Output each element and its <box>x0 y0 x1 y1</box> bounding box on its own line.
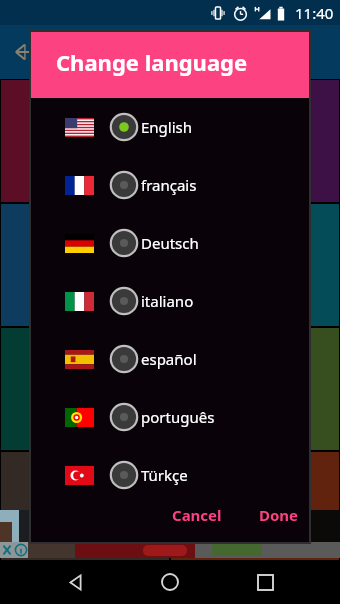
staticText: Deutsch <box>141 233 199 253</box>
button[interactable]: Back <box>8 36 40 68</box>
staticText: Synchronization <box>5 404 165 422</box>
staticText: Done <box>259 505 299 525</box>
button[interactable]: Login Setting <box>171 204 339 326</box>
button[interactable]: Deutsch <box>31 214 309 272</box>
button[interactable]: Done <box>250 499 308 531</box>
staticText: Login Setting <box>175 280 335 298</box>
button[interactable]: Back <box>55 562 95 602</box>
staticText: Rate Us <box>175 528 335 546</box>
button[interactable]: français <box>31 156 309 214</box>
button[interactable]: Rate Us <box>171 452 339 574</box>
staticText: Settings <box>5 528 165 546</box>
staticText: English <box>141 117 193 137</box>
button[interactable]: español <box>31 330 309 388</box>
button[interactable]: Home <box>150 562 190 602</box>
staticText: Change language <box>5 280 165 298</box>
staticText: Day mode <box>175 404 335 422</box>
button[interactable]: Settings <box>1 452 169 574</box>
button[interactable]: Türkçe <box>31 446 309 504</box>
staticText: português <box>141 407 215 427</box>
button[interactable]: Recents <box>245 562 285 602</box>
button[interactable]: Cancel <box>163 499 231 531</box>
button[interactable]: Synchronization <box>1 328 169 450</box>
staticText: italiano <box>141 291 194 311</box>
staticText: Change language <box>56 47 248 77</box>
button[interactable]: Donate <box>171 80 339 202</box>
staticText: Cancel <box>172 505 222 525</box>
button[interactable]: italiano <box>31 272 309 330</box>
staticText: About Us <box>5 156 165 174</box>
staticText: français <box>141 175 197 195</box>
button[interactable] <box>0 510 340 558</box>
button[interactable]: Day mode <box>171 328 339 450</box>
staticText: Donate <box>175 156 335 174</box>
staticText: 11:40 <box>295 3 334 23</box>
staticText: español <box>141 349 197 369</box>
staticText: Türkçe <box>141 465 188 485</box>
button[interactable]: English <box>31 98 309 156</box>
button[interactable]: português <box>31 388 309 446</box>
button[interactable]: Change language <box>1 204 169 326</box>
button[interactable]: About Us <box>1 80 169 202</box>
